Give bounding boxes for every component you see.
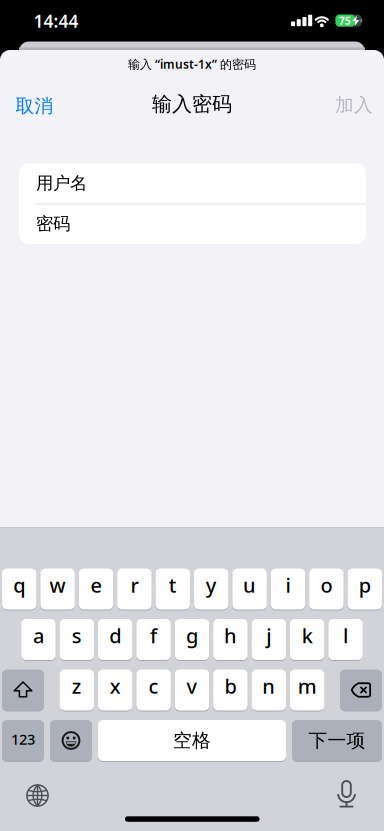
button[interactable]: z [60, 669, 94, 711]
button[interactable]: d [98, 618, 132, 660]
button[interactable]: 用户名 [36, 163, 366, 203]
staticText: 取消 [15, 94, 53, 117]
staticText: 空格 [173, 729, 211, 752]
staticText: 密码 [36, 213, 70, 234]
staticText: h [224, 622, 237, 649]
button[interactable]: x [98, 669, 132, 711]
button[interactable]: e [79, 568, 113, 610]
button[interactable]: t [156, 568, 190, 610]
staticText: s [72, 622, 82, 649]
staticText: v [186, 673, 197, 699]
button[interactable]: a [21, 618, 56, 660]
staticText: y [206, 572, 217, 598]
button[interactable]: r [117, 568, 152, 610]
button[interactable]: Dictate [326, 774, 366, 814]
button[interactable]: 密码 [36, 203, 366, 244]
button[interactable]: Shift [2, 669, 44, 711]
staticText: o [320, 572, 332, 598]
button[interactable]: v [175, 669, 209, 711]
staticText: k [302, 622, 313, 649]
button[interactable]: Delete [340, 669, 382, 711]
staticText: j [266, 622, 271, 649]
button[interactable]: c [136, 669, 171, 711]
button[interactable]: j [252, 618, 286, 660]
button[interactable]: q [2, 568, 36, 610]
staticText: t [169, 572, 177, 598]
staticText: p [359, 572, 371, 598]
staticText: 123 [11, 729, 35, 749]
button[interactable]: 取消 [15, 94, 53, 118]
staticText: f [150, 622, 157, 649]
staticText: 加入 [335, 93, 373, 116]
staticText: m [298, 673, 317, 699]
button[interactable]: y [194, 568, 228, 610]
staticText: e [90, 572, 101, 598]
staticText: w [50, 572, 66, 598]
button[interactable]: m [290, 669, 324, 711]
staticText: b [224, 673, 236, 699]
button[interactable]: l [328, 618, 363, 660]
button[interactable]: 123 [2, 719, 44, 761]
button[interactable]: Emoji [50, 719, 92, 761]
staticText: l [343, 622, 348, 649]
staticText: 14:44 [33, 9, 78, 32]
button[interactable]: n [252, 669, 286, 711]
staticText: g [186, 622, 198, 649]
button[interactable]: 加入 [335, 93, 373, 117]
button[interactable]: 空格 [98, 719, 286, 761]
button[interactable]: s [60, 618, 94, 660]
staticText: x [110, 673, 121, 699]
button[interactable]: u [232, 568, 267, 610]
staticText: z [72, 673, 82, 699]
button[interactable]: p [348, 568, 382, 610]
staticText: r [130, 572, 138, 598]
button[interactable]: h [213, 618, 248, 660]
staticText: n [262, 673, 275, 699]
staticText: 用户名 [36, 173, 87, 194]
button[interactable]: Next keyboard [17, 775, 57, 815]
staticText: 输入 “imust-1x” 的密码 [128, 56, 256, 72]
staticText: q [13, 572, 25, 598]
button[interactable]: b [213, 669, 248, 711]
staticText: a [33, 622, 44, 649]
staticText: 输入密码 [152, 92, 232, 116]
button[interactable]: k [290, 618, 324, 660]
staticText: i [285, 572, 290, 598]
staticText: 75 [339, 13, 351, 28]
button[interactable]: w [40, 568, 75, 610]
staticText: d [109, 622, 121, 649]
button[interactable]: o [309, 568, 344, 610]
button[interactable]: i [271, 568, 305, 610]
staticText: 下一项 [308, 729, 365, 752]
button[interactable]: g [175, 618, 209, 660]
button[interactable]: f [136, 618, 171, 660]
button[interactable]: 下一项 [292, 719, 382, 761]
staticText: u [243, 572, 256, 598]
staticText: c [149, 673, 159, 699]
